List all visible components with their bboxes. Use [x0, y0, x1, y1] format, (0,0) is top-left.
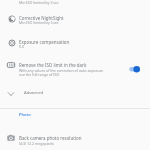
staticText: Back camera photo resolution: [19, 135, 82, 141]
button[interactable]: Exposure compensation: [0, 35, 150, 52]
staticText: use the full range of ISO: [19, 72, 60, 77]
staticText: Corrective NightSight: [19, 15, 64, 21]
staticText: Exposure compensation: [19, 39, 70, 45]
staticText: Min ISO limited by 3 sec: [19, 20, 59, 25]
button[interactable]: Corrective NightSight: [0, 11, 150, 28]
button[interactable]: Advanced: [0, 86, 150, 101]
staticText: Photo: [19, 112, 31, 118]
button[interactable]: Back camera photo resolution: [0, 131, 150, 150]
staticText: Min ISO limited by 3 sec: [19, 0, 59, 5]
staticText: 0.0: [19, 44, 25, 49]
button[interactable]: Remove the ISO limit in the dark: [0, 58, 150, 78]
staticText: Advanced: [24, 90, 44, 96]
staticText: With any values of the correction of aut…: [19, 68, 104, 73]
staticText: (4:3) 12.2 megapixels: [19, 141, 55, 146]
button[interactable]: Remove the ISO limit in the dark, on: [127, 63, 141, 75]
staticText: Remove the ISO limit in the dark: [19, 62, 87, 68]
